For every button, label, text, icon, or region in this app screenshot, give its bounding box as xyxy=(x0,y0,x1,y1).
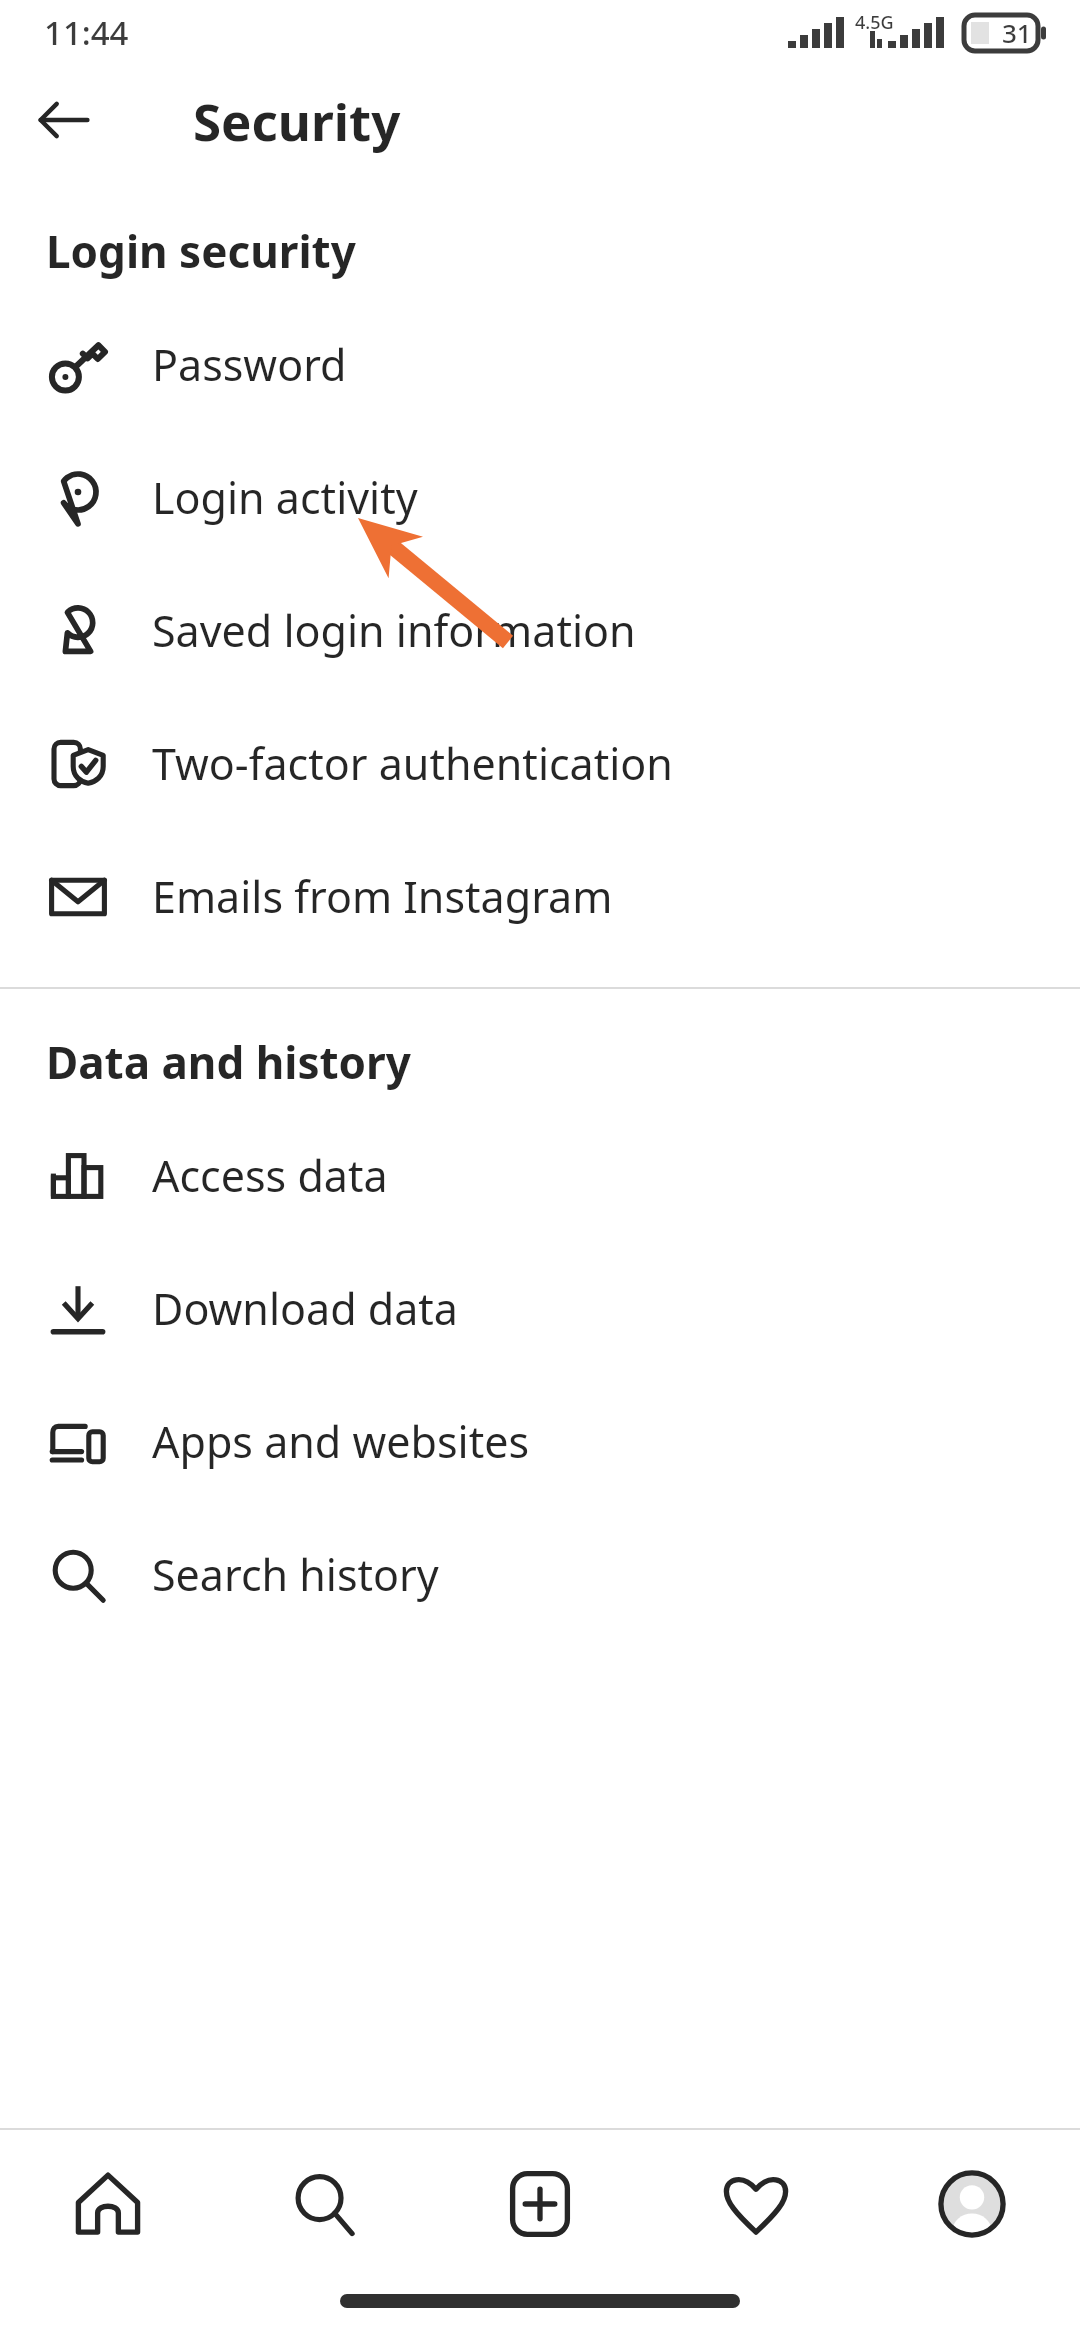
button[interactable]: Home xyxy=(0,2130,216,2278)
staticText: Data and history xyxy=(46,1032,411,1092)
button[interactable]: Apps and websites xyxy=(0,1375,1080,1508)
staticText: Apps and websites xyxy=(152,1412,530,1471)
staticText: 31 xyxy=(1002,15,1032,50)
staticText: Login activity xyxy=(152,468,418,527)
button[interactable]: Password xyxy=(0,298,1080,431)
button[interactable]: Profile xyxy=(864,2130,1080,2278)
button[interactable]: Back xyxy=(24,80,104,160)
button[interactable]: Search history xyxy=(0,1508,1080,1641)
staticText: Download data xyxy=(152,1279,458,1338)
staticText: 11:44 xyxy=(44,10,129,55)
button[interactable]: Two-factor authentication xyxy=(0,697,1080,830)
staticText: Saved login information xyxy=(152,601,636,660)
button[interactable]: Saved login information xyxy=(0,564,1080,697)
staticText: Emails from Instagram xyxy=(152,867,613,926)
staticText: Search history xyxy=(152,1545,439,1604)
button[interactable]: Download data xyxy=(0,1242,1080,1375)
staticText: Two-factor authentication xyxy=(152,734,673,793)
button[interactable]: Emails from Instagram xyxy=(0,830,1080,963)
button[interactable]: Search xyxy=(216,2130,432,2278)
staticText: Access data xyxy=(152,1146,388,1205)
staticText: Security xyxy=(193,86,401,155)
button[interactable]: Login activity xyxy=(0,431,1080,564)
button[interactable]: Create xyxy=(432,2130,648,2278)
staticText: Password xyxy=(152,335,347,394)
button[interactable]: Activity xyxy=(648,2130,864,2278)
button[interactable]: Access data xyxy=(0,1109,1080,1242)
staticText: Login security xyxy=(46,221,356,281)
staticText: 4.5G xyxy=(855,10,894,35)
